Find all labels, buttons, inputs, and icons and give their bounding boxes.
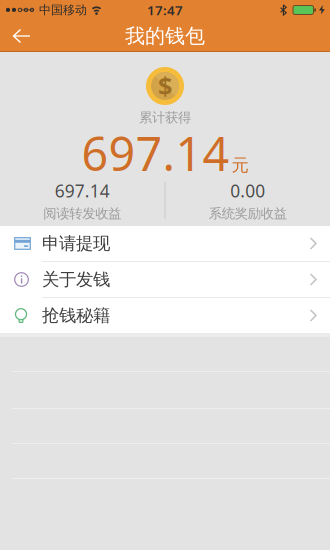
- staticText: 697.14: [55, 179, 110, 202]
- staticText: 关于发钱: [42, 269, 110, 290]
- staticText: 抢钱秘籍: [42, 305, 110, 326]
- staticText: 我的钱包: [125, 24, 205, 48]
- button[interactable]: Back: [0, 20, 43, 52]
- staticText: 阅读转发收益: [43, 205, 121, 222]
- button[interactable]: 申请提现: [0, 226, 330, 261]
- button[interactable]: 抢钱秘籍: [0, 298, 330, 333]
- staticText: 系统奖励收益: [209, 205, 287, 222]
- staticText: $: [158, 69, 172, 102]
- staticText: 697.14: [81, 122, 229, 184]
- staticText: 申请提现: [42, 233, 110, 254]
- staticText: 0.00: [230, 179, 265, 202]
- staticText: 17:47: [147, 1, 183, 19]
- button[interactable]: 关于发钱: [0, 262, 330, 297]
- staticText: 累计获得: [139, 109, 191, 126]
- staticText: 元: [231, 155, 248, 176]
- staticText: 中国移动: [39, 3, 87, 17]
